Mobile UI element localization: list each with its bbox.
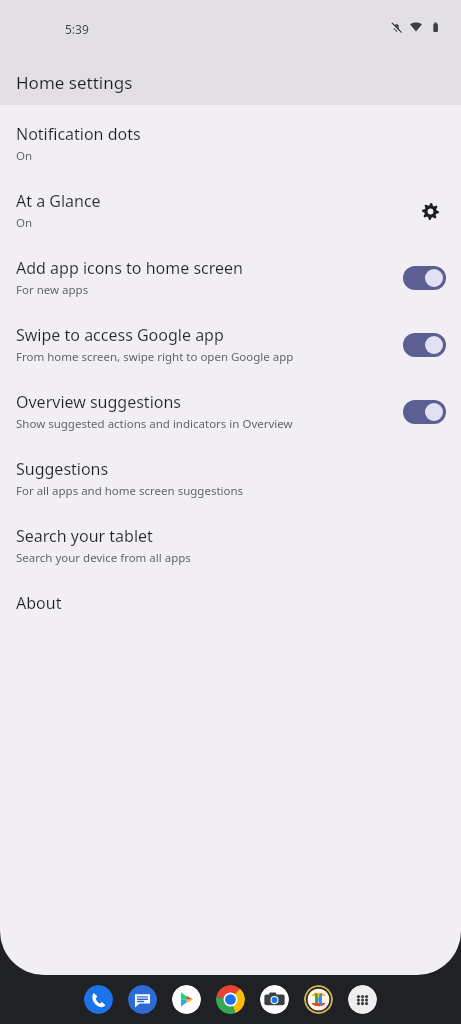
button[interactable]: Messages [128,985,157,1014]
button[interactable]: Camera [260,985,289,1014]
button[interactable]: Swipe to access Google app switch, on [400,330,448,360]
button[interactable]: Photos [304,985,333,1014]
staticText: For all apps and home screen suggestions [16,483,244,499]
staticText: About [16,592,62,614]
button[interactable]: Overview suggestions [0,378,461,445]
staticText: From home screen, swipe right to open Go… [16,349,294,365]
staticText: Notification dots [16,123,141,145]
button[interactable]: Suggestions [0,445,461,512]
staticText: At a Glance [16,190,101,212]
staticText: Show suggested actions and indicators in… [16,416,293,432]
staticText: Suggestions [16,458,109,480]
button[interactable]: Notification dots [0,110,461,177]
staticText: On [16,148,33,164]
staticText: Home settings [16,71,133,94]
button[interactable]: At a Glance settings [412,193,448,229]
button[interactable]: Add app icons to home screen [0,244,461,311]
staticText: 5:39 [65,21,89,37]
staticText: Add app icons to home screen [16,257,243,279]
staticText: Search your tablet [16,525,153,547]
button[interactable]: At a Glance [0,177,461,244]
button[interactable]: Play Store [172,985,201,1014]
staticText: Overview suggestions [16,391,182,413]
button[interactable]: Phone [84,985,113,1014]
staticText: Swipe to access Google app [16,324,224,346]
button[interactable]: Overview suggestions switch, on [400,397,448,427]
staticText: Search your device from all apps [16,550,191,566]
button[interactable]: Add app icons to home screen switch, on [400,263,448,293]
staticText: For new apps [16,282,89,298]
staticText: On [16,215,33,231]
button[interactable]: Search your tablet [0,512,461,579]
button[interactable]: About [0,579,461,627]
button[interactable]: All apps [348,985,377,1014]
button[interactable]: Swipe to access Google app [0,311,461,378]
button[interactable]: Chrome [216,985,245,1014]
